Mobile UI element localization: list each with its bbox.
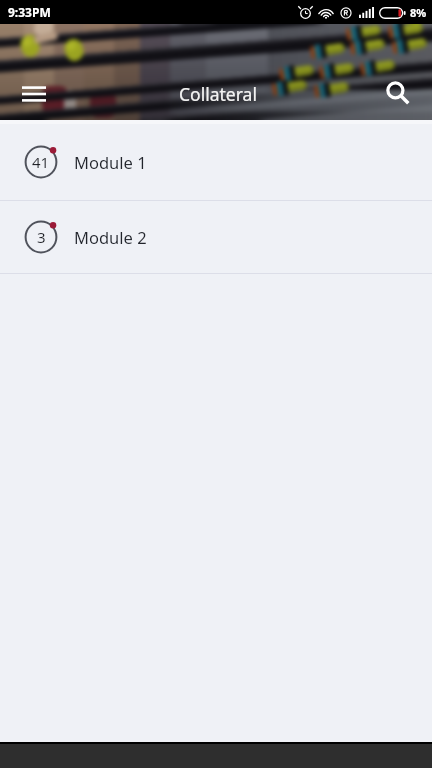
button[interactable]: Open navigation menu: [10, 70, 58, 118]
button[interactable]: 3: [0, 201, 432, 273]
staticText: Module 1: [74, 151, 147, 173]
staticText: Module 2: [74, 226, 147, 248]
staticText: Collateral: [179, 82, 257, 106]
staticText: 41: [32, 152, 50, 172]
staticText: 9:33PM: [8, 4, 51, 20]
staticText: 8%: [410, 5, 427, 20]
button[interactable]: 41: [0, 124, 432, 200]
staticText: 3: [37, 227, 46, 247]
button[interactable]: Search: [374, 70, 422, 118]
